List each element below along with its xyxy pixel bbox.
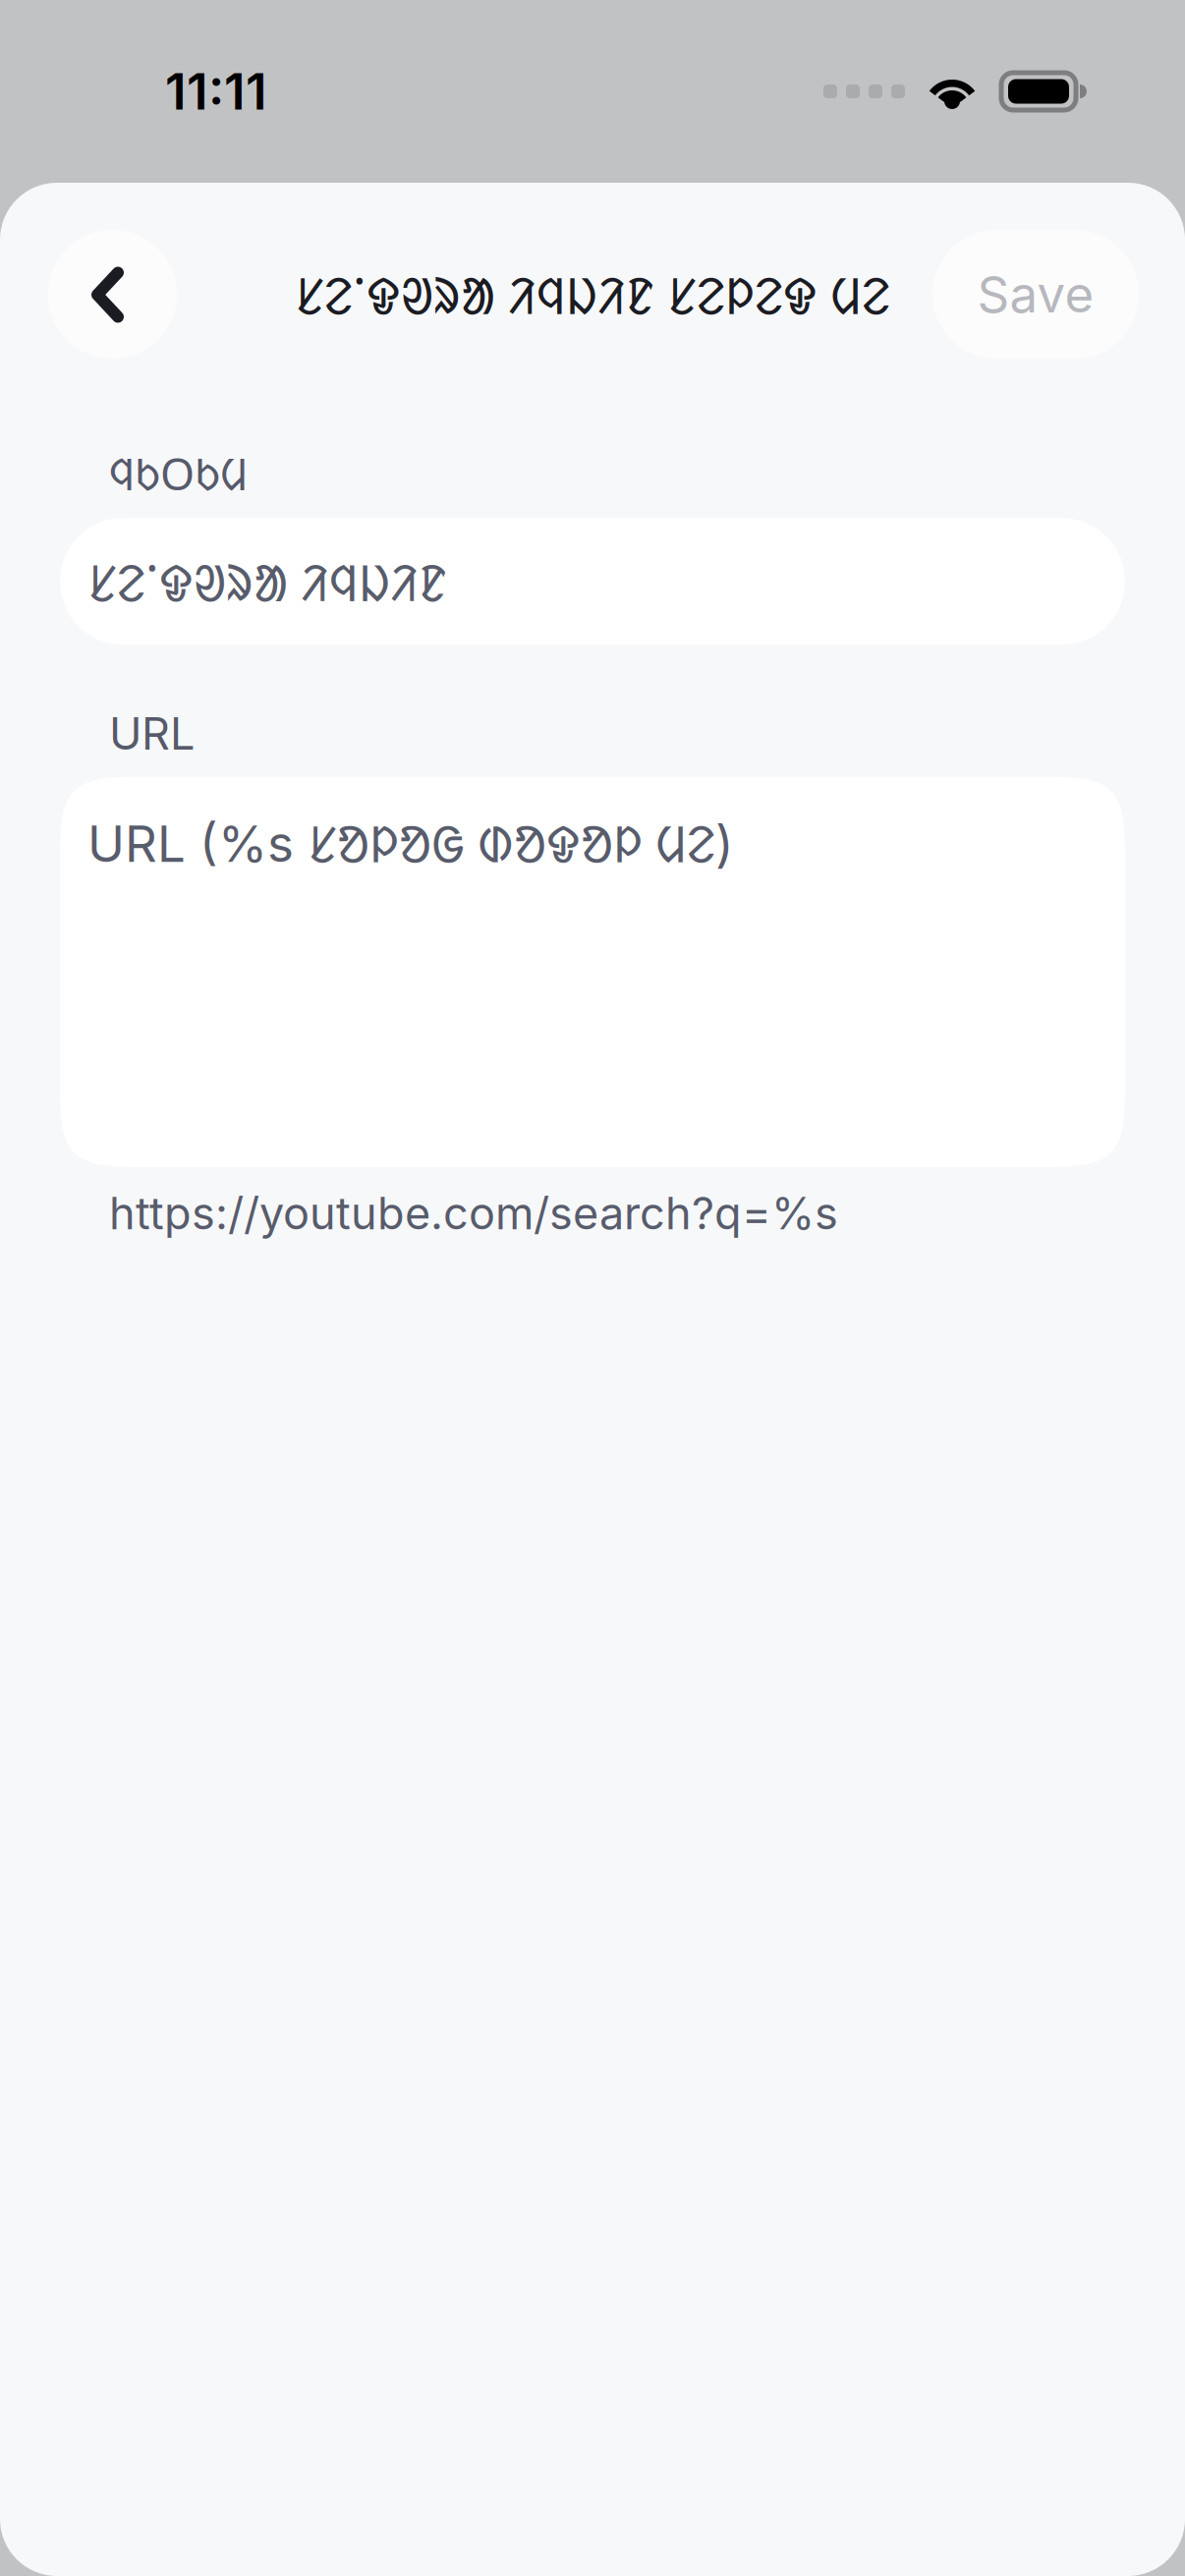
staticText: ᱥᱮᱸᱫᱣᱨᱟ ᱤᱧᱡᱤᱱ [87, 547, 447, 616]
staticText: https://youtube.com/search?q=%s [109, 1187, 838, 1240]
button[interactable]: Save [932, 230, 1139, 359]
staticText: URL (%s ᱥᱚᱞᱚᱜ ᱰᱚᱫᱚᱞ ᱢᱮ) [87, 808, 734, 877]
staticText: 11:11 [165, 61, 267, 122]
staticText: ᱥᱮᱸᱫᱣᱨᱟ ᱤᱧᱡᱤᱱ ᱥᱮᱞᱮᱫ ᱢᱮ [295, 260, 890, 328]
button[interactable]: Back [48, 230, 177, 359]
staticText: ᱧᱠᱛᱠᱢ [109, 443, 248, 503]
staticText: Save [977, 264, 1094, 325]
staticText: URL [109, 707, 195, 760]
